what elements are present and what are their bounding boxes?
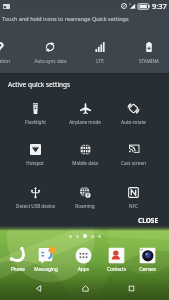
button[interactable]: Airplane mode: [57, 103, 113, 125]
button[interactable]: Messaging: [29, 247, 63, 272]
staticText: Flashlight: [25, 119, 46, 125]
button[interactable]: LTE: [77, 25, 123, 73]
button[interactable]: Mobile data: [57, 144, 113, 166]
button[interactable]: Location: [0, 25, 23, 73]
staticText: Mobile data: [72, 160, 98, 166]
staticText: Auto-sync data: [34, 58, 67, 64]
button[interactable]: Hotspot: [7, 144, 63, 166]
staticText: CLOSE: [138, 216, 159, 223]
staticText: Location: [0, 58, 10, 64]
button[interactable]: Roaming: [57, 187, 113, 209]
staticText: Auto-rotate: [121, 119, 146, 125]
button[interactable]: Phone: [1, 247, 35, 272]
staticText: Camera: [139, 266, 156, 272]
staticText: Apps: [78, 266, 89, 272]
staticText: Messaging: [34, 266, 58, 272]
staticText: Contacts: [107, 266, 126, 272]
button[interactable]: Auto-sync data: [27, 25, 73, 73]
staticText: 9:37: [152, 1, 167, 11]
staticText: Touch and hold icons to rearrange Quick …: [2, 15, 129, 22]
staticText: Phone: [11, 266, 25, 272]
staticText: Detect USB device: [16, 203, 55, 209]
button[interactable]: Flashlight: [7, 103, 63, 125]
button[interactable]: Camera: [130, 247, 164, 272]
staticText: LTE: [96, 58, 104, 64]
staticText: Hotspot: [26, 160, 44, 166]
button[interactable]: Cast screen: [105, 144, 161, 166]
staticText: Roaming: [75, 203, 95, 209]
button[interactable]: Back: [29, 279, 47, 297]
button[interactable]: STAMINA: [126, 25, 169, 73]
button[interactable]: Home: [76, 279, 94, 297]
staticText: Cast screen: [121, 160, 146, 166]
button[interactable]: CLOSE: [128, 213, 169, 226]
button[interactable]: Auto-rotate: [105, 103, 161, 125]
button[interactable]: Contacts: [99, 247, 133, 272]
button[interactable]: Apps: [66, 247, 100, 272]
staticText: Active quick settings: [8, 80, 71, 89]
staticText: Airplane mode: [69, 119, 101, 125]
staticText: STAMINA: [139, 58, 159, 64]
button[interactable]: Recent apps: [122, 279, 140, 297]
button[interactable]: Detect USB device: [7, 187, 63, 209]
staticText: NFC: [129, 203, 138, 209]
button[interactable]: NFC: [105, 187, 161, 209]
